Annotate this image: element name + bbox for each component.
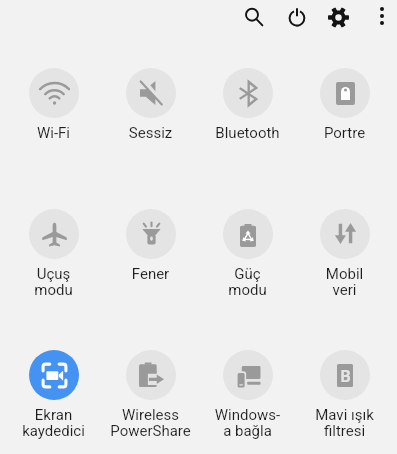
- button[interactable]: Settings: [316, 0, 360, 39]
- staticText: Bluetooth: [199, 124, 296, 142]
- button[interactable]: Bluetooth: [199, 68, 296, 142]
- button[interactable]: More options: [360, 0, 397, 38]
- button[interactable]: Sessiz: [102, 68, 199, 142]
- staticText: Wi-Fi: [5, 124, 102, 142]
- button[interactable]: Search: [232, 0, 276, 39]
- button[interactable]: Güç modu: [199, 209, 296, 298]
- button[interactable]: Ekran kaydedici: [5, 350, 102, 439]
- button[interactable]: Fener: [102, 209, 199, 283]
- staticText: Portre: [296, 124, 393, 142]
- button[interactable]: Windows- a bağla: [199, 350, 296, 439]
- staticText: Windows- a bağla: [199, 406, 296, 439]
- button[interactable]: Uçuş modu: [5, 209, 102, 298]
- staticText: Uçuş modu: [5, 265, 102, 298]
- button[interactable]: Mavi ışık filtresi: [296, 350, 393, 439]
- button[interactable]: Portre: [296, 68, 393, 142]
- button[interactable]: Wi-Fi: [5, 68, 102, 142]
- button[interactable]: Mobil veri: [296, 209, 393, 298]
- staticText: Sessiz: [102, 124, 199, 142]
- button[interactable]: Wireless PowerShare: [102, 350, 199, 439]
- staticText: Fener: [102, 265, 199, 283]
- staticText: Wireless PowerShare: [102, 406, 199, 439]
- staticText: Mavi ışık filtresi: [296, 406, 393, 439]
- button[interactable]: Power: [275, 0, 319, 39]
- staticText: Güç modu: [199, 265, 296, 298]
- staticText: Mobil veri: [296, 265, 393, 298]
- staticText: Ekran kaydedici: [5, 406, 102, 439]
- staticText: B: [340, 367, 351, 386]
